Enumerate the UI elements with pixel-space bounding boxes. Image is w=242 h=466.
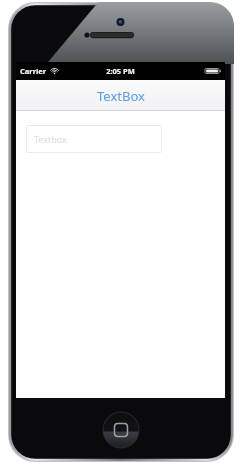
staticText: Textbox (34, 133, 67, 145)
staticText: 2:05 PM (106, 66, 135, 76)
button[interactable]: Textbox (26, 125, 162, 153)
staticText: Carrier (20, 66, 47, 76)
other: Home (101, 410, 141, 450)
staticText: TextBox (97, 87, 145, 105)
